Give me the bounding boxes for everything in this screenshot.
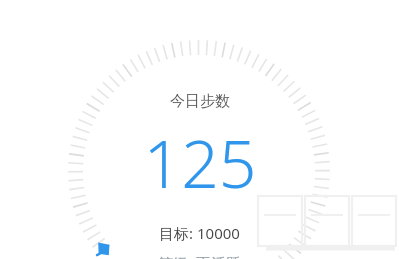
staticText: 125: [143, 117, 257, 207]
button[interactable]: Step counter dial: [0, 0, 399, 259]
staticText: 等级: 不活跃: [158, 253, 241, 259]
staticText: 目标: 10000: [159, 223, 240, 243]
staticText: 今日步数: [170, 92, 230, 111]
